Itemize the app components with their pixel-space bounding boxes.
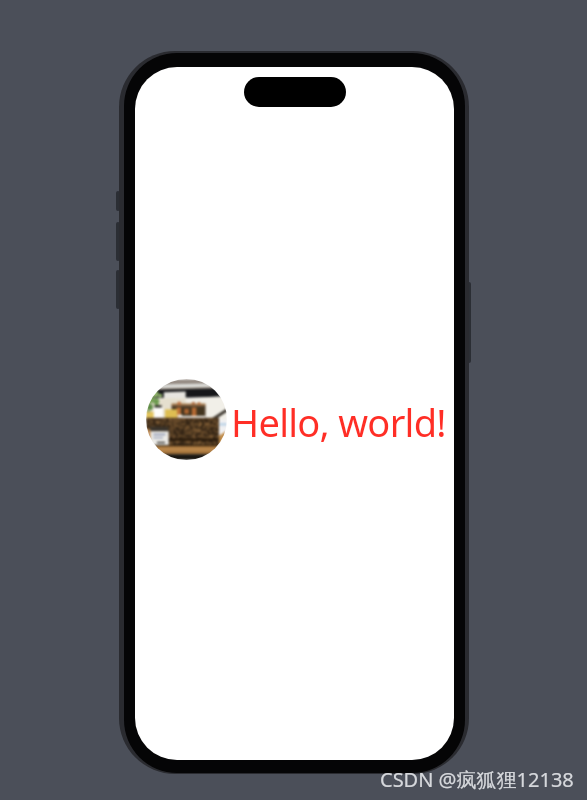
staticText: Hello, world!	[231, 396, 446, 448]
button[interactable]: Volume up	[116, 222, 120, 261]
button[interactable]: Volume down	[116, 270, 120, 309]
other: Profile photo	[146, 379, 227, 460]
button[interactable]: Profile photo	[146, 379, 442, 460]
staticText: CSDN @疯狐狸12138	[380, 766, 574, 793]
button[interactable]: Mute switch	[116, 191, 120, 211]
